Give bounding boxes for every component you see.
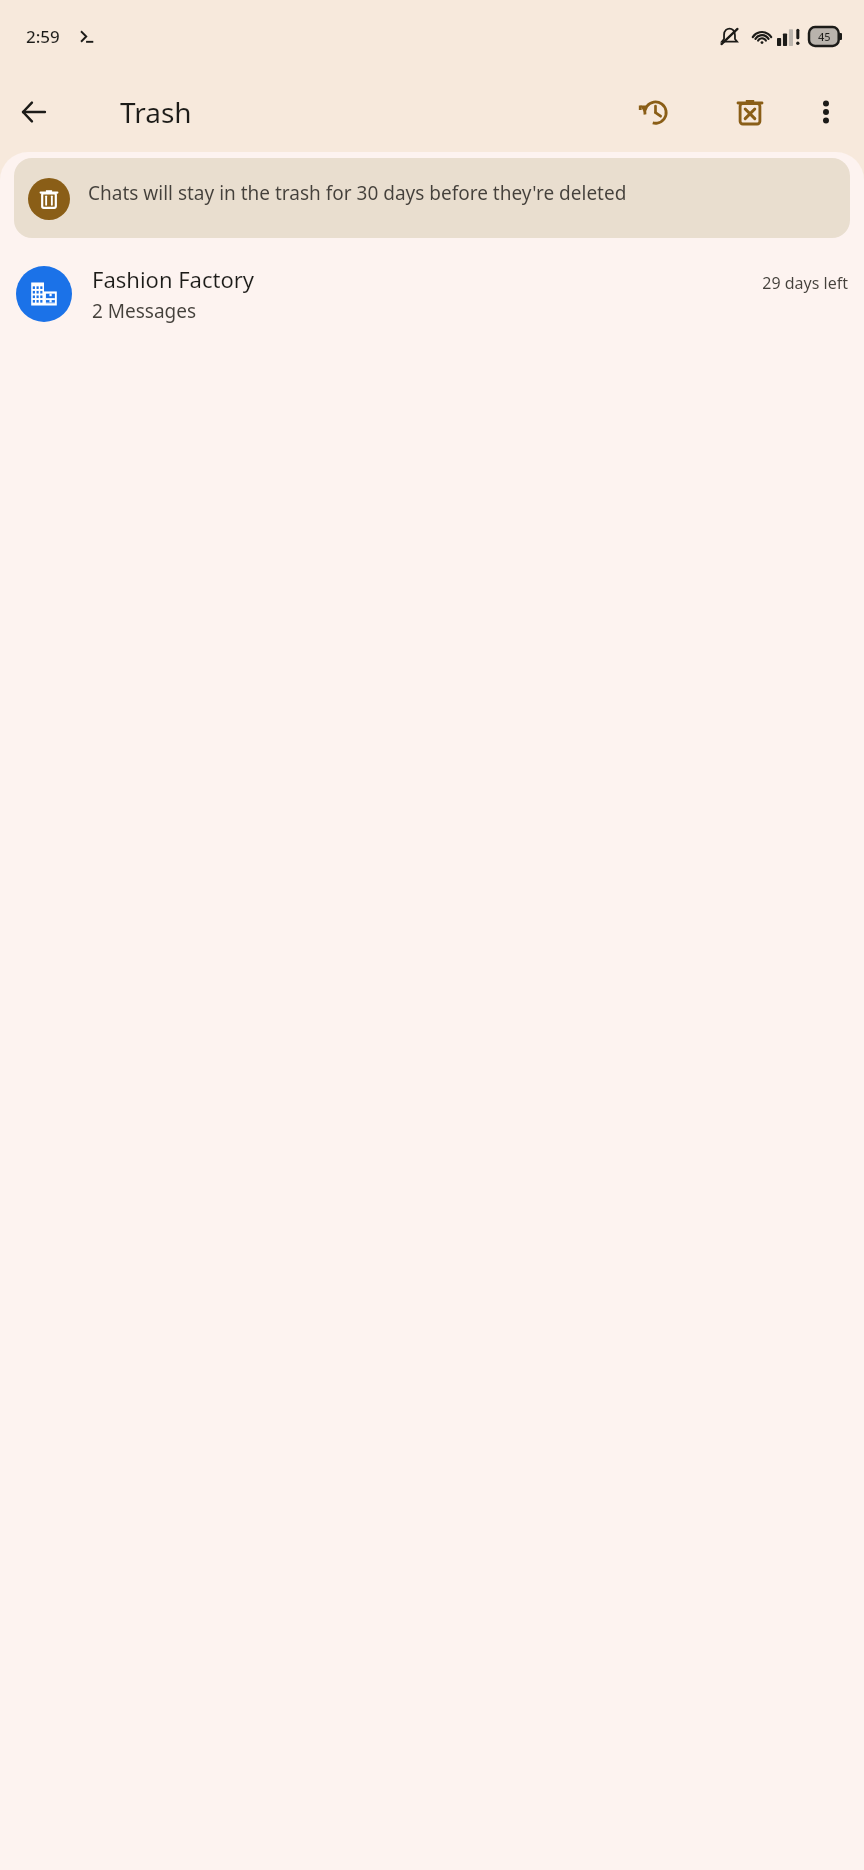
- staticText: Trash: [120, 93, 192, 131]
- button[interactable]: Fashion Factory: [0, 254, 864, 334]
- staticText: 2:59: [26, 25, 60, 48]
- staticText: Fashion Factory: [92, 264, 255, 294]
- staticText: 45: [818, 29, 831, 44]
- button[interactable]: Back: [10, 88, 58, 136]
- staticText: 2 Messages: [92, 298, 197, 324]
- button[interactable]: More options: [800, 86, 852, 138]
- staticText: 29 days left: [762, 272, 848, 294]
- button[interactable]: Restore: [628, 86, 680, 138]
- staticText: Chats will stay in the trash for 30 days…: [88, 180, 836, 206]
- button[interactable]: Chats will stay in the trash for 30 days…: [14, 158, 850, 238]
- button[interactable]: Delete forever: [724, 86, 776, 138]
